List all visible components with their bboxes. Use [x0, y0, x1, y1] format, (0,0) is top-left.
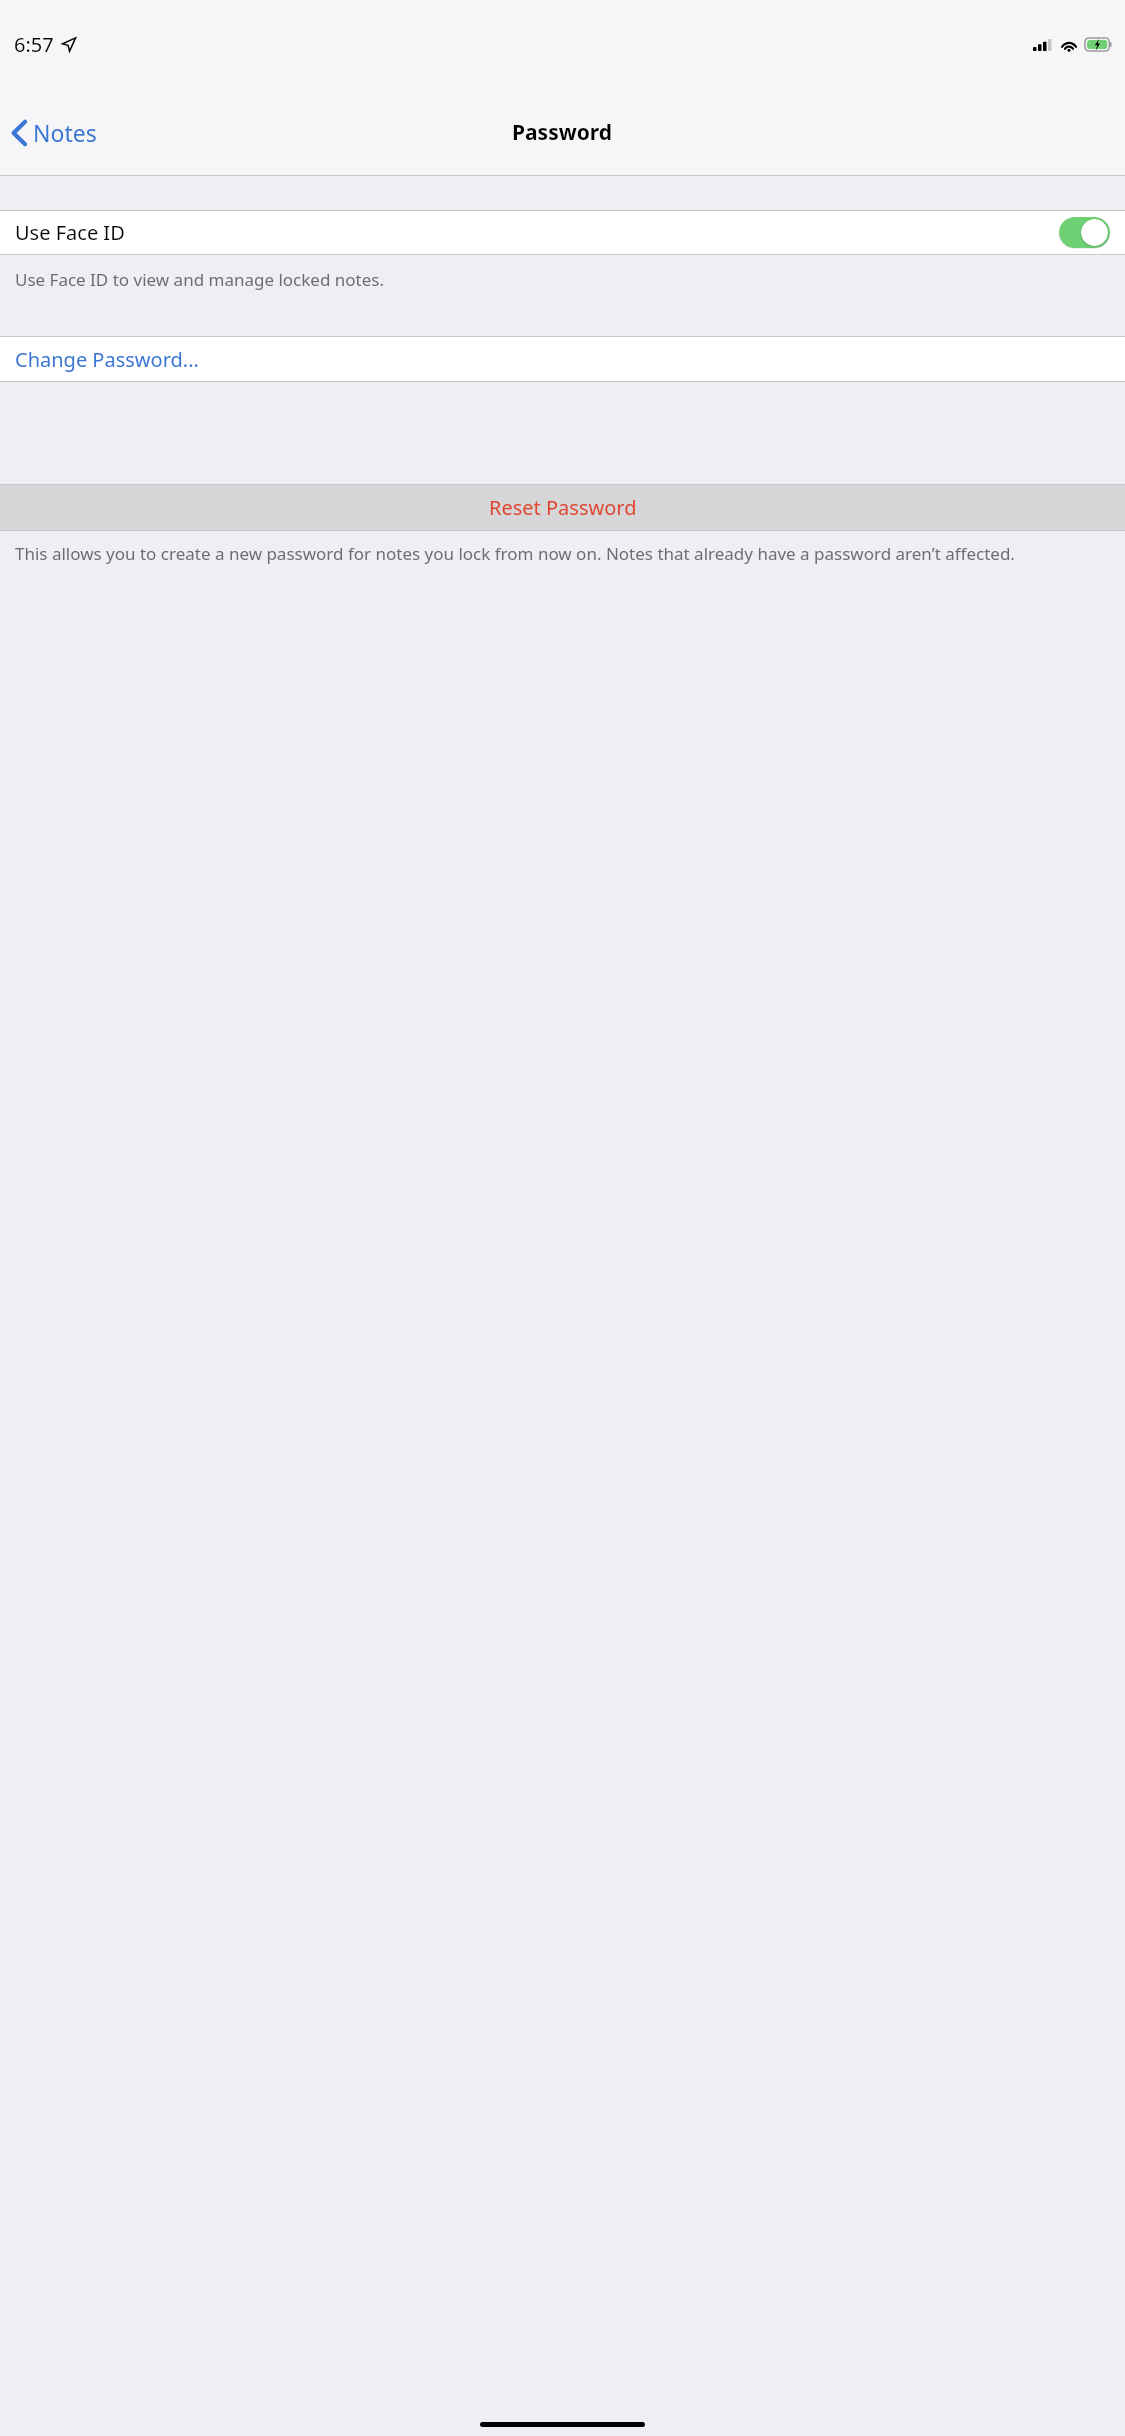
button[interactable]: Reset Password — [0, 485, 1125, 530]
staticText: Password — [512, 118, 613, 147]
staticText: Use Face ID — [15, 219, 125, 246]
staticText: Reset Password — [489, 494, 637, 521]
button[interactable]: Change Password... — [0, 337, 1125, 381]
staticText: 6:57 — [14, 31, 54, 58]
staticText: This allows you to create a new password… — [15, 542, 1015, 565]
staticText: Notes — [33, 117, 97, 148]
staticText: Change Password... — [15, 346, 199, 373]
button[interactable]: Notes — [5, 111, 103, 154]
staticText: Use Face ID to view and manage locked no… — [15, 268, 385, 291]
button[interactable]: Use Face ID toggle, on — [1059, 217, 1110, 248]
button[interactable]: Use Face ID — [0, 211, 1125, 254]
